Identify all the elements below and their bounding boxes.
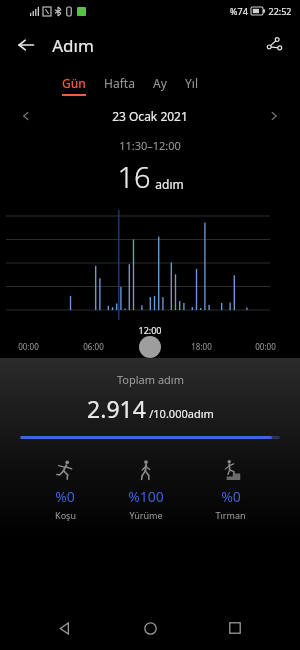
- button[interactable]: Yıl: [183, 75, 200, 96]
- staticText: Yürüme: [129, 509, 163, 521]
- staticText: 00:00: [18, 341, 39, 352]
- staticText: Hafta: [104, 75, 135, 91]
- button[interactable]: %100: [118, 457, 174, 523]
- staticText: Tırman: [215, 509, 246, 521]
- staticText: Yıl: [185, 75, 198, 91]
- button[interactable]: Previous day: [12, 102, 40, 130]
- button[interactable]: Next day: [260, 102, 288, 130]
- staticText: Adım: [52, 34, 94, 57]
- staticText: 11:30–12:00: [119, 138, 181, 153]
- staticText: %100: [128, 487, 164, 506]
- staticText: 16: [117, 157, 151, 196]
- button[interactable]: %0: [44, 457, 86, 523]
- button[interactable]: Time scrubber: [139, 336, 161, 358]
- staticText: /10.000adım: [149, 406, 214, 421]
- staticText: 2.914: [87, 393, 146, 424]
- button[interactable]: Share: [256, 27, 292, 63]
- staticText: 23 Ocak 2021: [112, 108, 188, 124]
- staticText: 22:52: [268, 5, 292, 17]
- button[interactable]: Home: [130, 608, 170, 648]
- staticText: Gün: [62, 75, 86, 91]
- button[interactable]: Recent apps: [215, 608, 255, 648]
- staticText: Koşu: [55, 509, 76, 521]
- staticText: Toplam adım: [117, 372, 184, 387]
- staticText: Ay: [153, 75, 167, 91]
- button[interactable]: %0: [205, 457, 256, 523]
- button[interactable]: Gün: [60, 75, 88, 96]
- button[interactable]: Back: [8, 27, 44, 63]
- staticText: 12:00: [138, 324, 162, 336]
- staticText: 06:00: [83, 341, 104, 352]
- staticText: %0: [221, 487, 241, 506]
- staticText: adım: [155, 176, 184, 192]
- staticText: 00:00: [255, 341, 276, 352]
- staticText: %74: [230, 5, 248, 17]
- button[interactable]: Back: [45, 608, 85, 648]
- button[interactable]: Ay: [151, 75, 169, 96]
- staticText: %0: [55, 487, 75, 506]
- staticText: 18:00: [191, 341, 212, 352]
- button[interactable]: Hafta: [102, 75, 137, 96]
